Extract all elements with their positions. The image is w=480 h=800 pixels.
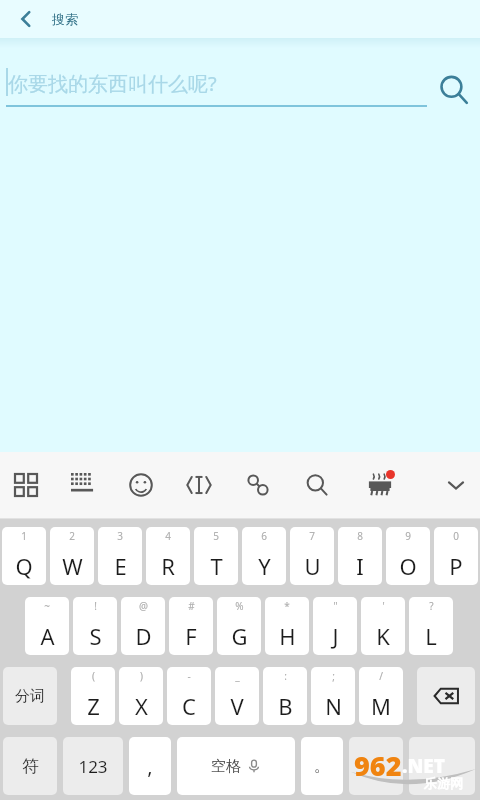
- staticText: -: [187, 669, 191, 683]
- button[interactable]: Back: [6, 0, 46, 38]
- staticText: _: [235, 669, 240, 683]
- button[interactable]: Backspace: [417, 667, 475, 725]
- staticText: T: [210, 551, 223, 581]
- staticText: 962: [354, 747, 402, 784]
- button[interactable]: #: [169, 597, 213, 655]
- staticText: @: [139, 599, 148, 613]
- button[interactable]: *: [265, 597, 309, 655]
- button[interactable]: Skin: [358, 463, 402, 507]
- staticText: G: [231, 621, 248, 651]
- button[interactable]: @: [121, 597, 165, 655]
- button[interactable]: 4: [146, 527, 190, 585]
- staticText: X: [135, 691, 148, 721]
- button[interactable]: ~: [25, 597, 69, 655]
- staticText: 0: [453, 529, 459, 543]
- staticText: (: [92, 669, 95, 683]
- button[interactable]: 5: [194, 527, 238, 585]
- staticText: 1: [21, 529, 27, 543]
- button[interactable]: ?: [409, 597, 453, 655]
- staticText: Z: [87, 691, 100, 721]
- staticText: I: [356, 551, 364, 581]
- staticText: V: [230, 691, 244, 721]
- button[interactable]: 确定: [409, 737, 475, 795]
- button[interactable]: (: [71, 667, 115, 725]
- staticText: ;: [332, 669, 335, 683]
- staticText: ": [333, 599, 338, 613]
- button[interactable]: ;: [311, 667, 355, 725]
- button[interactable]: 8: [338, 527, 382, 585]
- button[interactable]: Cursor: [177, 463, 221, 507]
- staticText: C: [182, 691, 196, 721]
- button[interactable]: 7: [290, 527, 334, 585]
- button[interactable]: %: [217, 597, 261, 655]
- staticText: 8: [357, 529, 363, 543]
- button[interactable]: Search: [432, 68, 476, 112]
- button[interactable]: :: [263, 667, 307, 725]
- staticText: F: [185, 621, 197, 651]
- button[interactable]: 2: [50, 527, 94, 585]
- staticText: 。: [314, 756, 330, 776]
- button[interactable]: 1: [2, 527, 46, 585]
- button[interactable]: 空格: [177, 737, 295, 795]
- button[interactable]: ): [119, 667, 163, 725]
- staticText: M: [371, 691, 391, 721]
- staticText: 9: [405, 529, 411, 543]
- staticText: 搜索: [52, 11, 78, 27]
- button[interactable]: Hide keyboard: [434, 463, 478, 507]
- staticText: #: [188, 599, 195, 613]
- staticText: E: [114, 551, 127, 581]
- staticText: 3: [117, 529, 123, 543]
- staticText: 5: [213, 529, 219, 543]
- staticText: ): [140, 669, 143, 683]
- staticText: W: [62, 551, 83, 581]
- staticText: N: [325, 691, 342, 721]
- staticText: J: [332, 621, 339, 651]
- button[interactable]: Apps: [4, 463, 48, 507]
- button[interactable]: Search: [295, 463, 339, 507]
- button[interactable]: 6: [242, 527, 286, 585]
- staticText: R: [161, 551, 175, 581]
- button[interactable]: 0: [434, 527, 478, 585]
- staticText: !: [94, 599, 97, 613]
- staticText: 分词: [15, 687, 45, 706]
- button[interactable]: _: [215, 667, 259, 725]
- staticText: B: [278, 691, 293, 721]
- staticText: 你要找的东西叫什么呢?: [8, 70, 217, 97]
- button[interactable]: ": [313, 597, 357, 655]
- button[interactable]: 9: [386, 527, 430, 585]
- button[interactable]: 句号: [301, 737, 343, 795]
- button[interactable]: 逗号: [129, 737, 171, 795]
- staticText: L: [425, 621, 437, 651]
- staticText: 2: [69, 529, 75, 543]
- button[interactable]: 符号: [3, 737, 57, 795]
- button[interactable]: 123: [63, 737, 123, 795]
- staticText: Q: [15, 551, 33, 581]
- button[interactable]: 3: [98, 527, 142, 585]
- staticText: 空格: [211, 757, 241, 776]
- button[interactable]: /: [359, 667, 403, 725]
- button[interactable]: 分词: [3, 667, 57, 725]
- staticText: ~: [44, 599, 50, 613]
- staticText: P: [449, 551, 463, 581]
- staticText: ,: [147, 753, 153, 780]
- staticText: .NET: [402, 753, 445, 779]
- staticText: *: [284, 599, 290, 613]
- staticText: 123: [78, 755, 108, 778]
- staticText: 乐游网: [424, 775, 463, 791]
- button[interactable]: !: [73, 597, 117, 655]
- staticText: %: [235, 599, 244, 613]
- button[interactable]: Keyboard: [61, 463, 105, 507]
- staticText: S: [89, 621, 102, 651]
- button[interactable]: ': [361, 597, 405, 655]
- staticText: O: [399, 551, 417, 581]
- staticText: D: [135, 621, 152, 651]
- staticText: U: [304, 551, 321, 581]
- button[interactable]: -: [167, 667, 211, 725]
- button[interactable]: Emoji: [119, 463, 163, 507]
- button[interactable]: 换行: [349, 737, 403, 795]
- button[interactable]: Clipboard: [236, 463, 280, 507]
- staticText: 6: [261, 529, 267, 543]
- staticText: K: [376, 621, 390, 651]
- staticText: H: [279, 621, 296, 651]
- staticText: 符: [22, 756, 39, 777]
